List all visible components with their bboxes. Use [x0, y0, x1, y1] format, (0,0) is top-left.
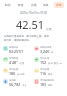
staticText: 2025年10月16日 07:30 — [0, 11, 67, 15]
other: Average cadence — [3, 68, 8, 73]
button[interactable]: Average pace — [2, 56, 33, 65]
staticText: /公里 — [19, 62, 25, 65]
staticText: 152 — [40, 60, 47, 65]
button[interactable]: 制动 — [3, 2, 13, 8]
other: Elevation gain — [34, 46, 39, 51]
staticText: 总爬升高度 — [40, 46, 52, 49]
staticText: 56,782 — [9, 82, 21, 87]
button[interactable]: 详情 — [54, 2, 64, 8]
button[interactable]: Average stride — [33, 67, 65, 76]
staticText: 平均心率 — [40, 57, 50, 60]
staticText: 116 — [40, 71, 47, 76]
staticText: 03:25'51 — [9, 49, 24, 54]
staticText: 长跑耐力显著提高，耐力体能上限、提高 — [4, 35, 63, 38]
other: Average heart rate — [34, 57, 39, 62]
button[interactable]: 步频 — [29, 2, 39, 8]
staticText: 毫秒 — [48, 84, 53, 87]
staticText: 千卡 — [22, 84, 27, 87]
button[interactable]: Elevation gain — [33, 45, 65, 54]
staticText: 183 — [40, 82, 47, 87]
button[interactable]: Calories — [2, 78, 33, 87]
button[interactable]: Duration — [2, 45, 33, 54]
staticText: 厘米 — [48, 73, 53, 76]
staticText: 平均配速 — [9, 57, 19, 60]
other: Duration — [3, 46, 8, 51]
staticText: 平均触地时间 — [40, 79, 54, 82]
other: Average pace — [3, 57, 8, 62]
staticText: 耐力时，继续积累训练。 — [4, 39, 63, 42]
staticText: 180 — [9, 71, 16, 76]
staticText: 制动 — [5, 3, 11, 7]
button[interactable]: 配速 — [16, 2, 26, 8]
staticText: 总消耗 — [9, 79, 16, 82]
staticText: 平均步频 — [9, 68, 19, 71]
staticText: 配速 — [18, 3, 24, 7]
staticText: 详情 — [56, 3, 62, 7]
staticText: 公里 — [46, 27, 52, 31]
staticText: 步/分钟 — [17, 73, 25, 76]
staticText: 运动时长 — [9, 46, 19, 49]
staticText: 海拔 — [43, 3, 49, 7]
button[interactable]: Ground contact time — [33, 78, 65, 87]
button[interactable]: 海拔 — [41, 2, 51, 8]
staticText: 4'48" — [9, 60, 18, 65]
other: Calories — [3, 79, 8, 84]
staticText: 3,240 — [40, 49, 50, 54]
other: Ground contact time — [34, 79, 39, 84]
button[interactable]: Average cadence — [2, 67, 33, 76]
staticText: 平均步幅 — [40, 68, 50, 71]
staticText: 42.51 — [16, 17, 45, 32]
other: Average stride — [34, 68, 39, 73]
staticText: 次/分 最大 181 — [48, 62, 63, 65]
staticText: 米 — [51, 51, 54, 54]
staticText: 步频 — [31, 3, 37, 7]
button[interactable]: Average heart rate — [33, 56, 65, 65]
